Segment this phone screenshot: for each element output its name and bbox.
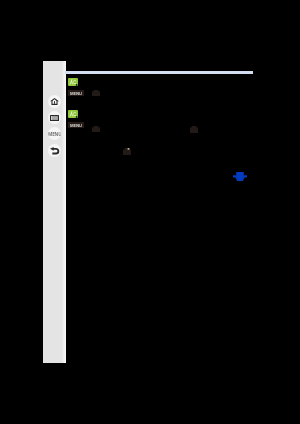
button[interactable]: MENU xyxy=(68,122,84,128)
button[interactable]: Recent apps xyxy=(48,111,61,124)
staticText: MENU xyxy=(70,91,82,96)
button[interactable]: Menu xyxy=(48,127,61,140)
staticText: MENU xyxy=(48,131,61,137)
button[interactable]: Android app icon xyxy=(68,110,78,118)
button[interactable]: Home xyxy=(48,95,61,108)
button[interactable]: Android app icon xyxy=(68,78,78,86)
button[interactable]: Back xyxy=(48,144,61,157)
staticText: MENU xyxy=(70,123,82,128)
button[interactable]: MENU xyxy=(68,90,84,96)
other: Marker xyxy=(233,172,247,181)
